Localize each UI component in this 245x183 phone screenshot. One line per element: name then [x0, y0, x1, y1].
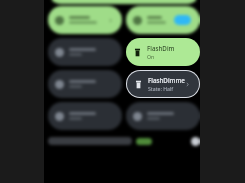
- button[interactable]: FlashDim Toggle: [126, 38, 200, 66]
- button[interactable]: Toggle: [174, 15, 191, 25]
- button[interactable]: [48, 70, 122, 98]
- button[interactable]: [48, 38, 122, 66]
- button[interactable]: [126, 102, 200, 130]
- button[interactable]: FlashDimmer: [127, 71, 199, 97]
- button[interactable]: [48, 102, 122, 130]
- staticText: State: Half: [148, 85, 174, 92]
- staticText: On: [147, 53, 155, 60]
- button[interactable]: Toggle: [126, 6, 200, 34]
- staticText: FlashDim Toggle: [147, 44, 193, 52]
- staticText: FlashDimmer: [148, 76, 185, 84]
- button[interactable]: [48, 6, 122, 34]
